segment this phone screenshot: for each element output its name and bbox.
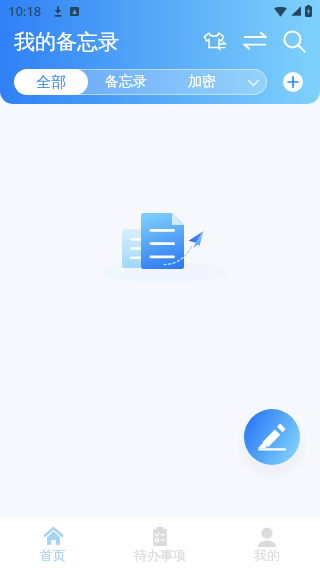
button[interactable]: Sort xyxy=(241,26,269,56)
button[interactable]: Add xyxy=(283,72,303,92)
staticText: 10:18 xyxy=(8,2,42,20)
staticText: 待办事项 xyxy=(134,547,186,563)
button[interactable]: 备忘录 xyxy=(105,69,147,95)
staticText: 首页 xyxy=(40,547,66,563)
button[interactable]: New note xyxy=(244,409,300,465)
button[interactable]: Search xyxy=(280,26,308,56)
button[interactable]: 待办事项 xyxy=(106,518,213,568)
button[interactable]: 首页 xyxy=(0,518,106,568)
button[interactable]: 加密 xyxy=(174,69,267,95)
button[interactable]: Change theme xyxy=(200,26,230,56)
staticText: 我的 xyxy=(254,547,280,563)
button[interactable]: 我的 xyxy=(213,518,320,568)
button[interactable]: 全部 xyxy=(14,69,88,95)
staticText: 加密 xyxy=(188,73,216,91)
staticText: 我的备忘录 xyxy=(14,29,119,55)
staticText: 备忘录 xyxy=(105,73,147,91)
staticText: 全部 xyxy=(36,73,66,92)
